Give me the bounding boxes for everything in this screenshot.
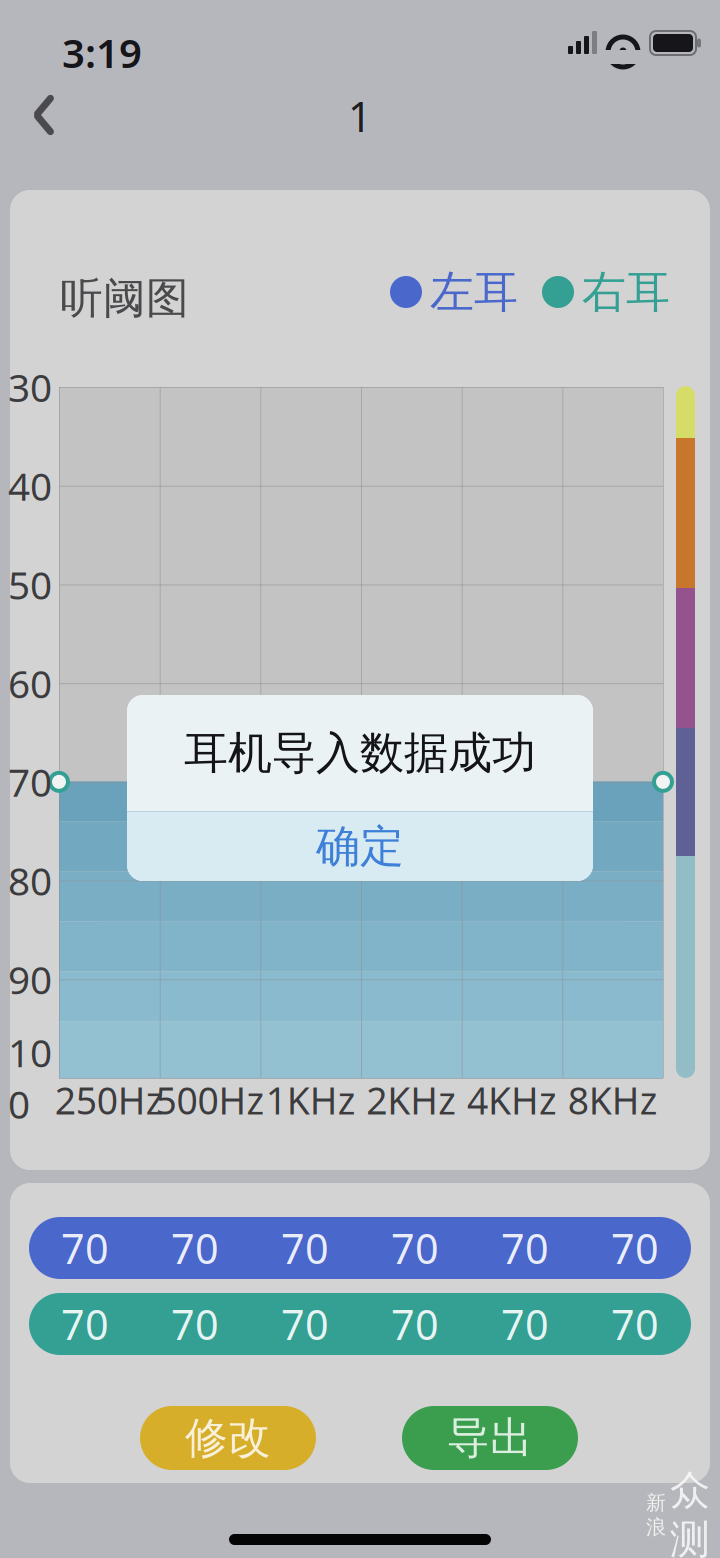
- staticText: 右耳: [582, 265, 670, 319]
- staticText: 30: [8, 361, 52, 413]
- staticText: 80: [8, 855, 52, 906]
- staticText: 耳机导入数据成功: [184, 726, 536, 780]
- staticText: 70: [171, 1297, 219, 1351]
- staticText: 新: [646, 1490, 666, 1515]
- staticText: 70: [391, 1221, 439, 1275]
- staticText: 250Hz: [55, 1075, 164, 1125]
- staticText: 60: [8, 657, 52, 709]
- staticText: 50: [8, 559, 52, 610]
- staticText: 500Hz: [155, 1075, 264, 1125]
- staticText: 导出: [447, 1412, 533, 1464]
- staticText: 4KHz: [467, 1075, 557, 1125]
- staticText: 3:19: [62, 26, 142, 79]
- button[interactable]: 修改: [140, 1406, 316, 1470]
- staticText: 修改: [185, 1412, 271, 1464]
- staticText: 1KHz: [266, 1075, 356, 1125]
- staticText: 90: [8, 954, 52, 1005]
- staticText: 70: [391, 1297, 439, 1351]
- staticText: 70: [8, 756, 52, 807]
- staticText: 100: [8, 1027, 52, 1129]
- staticText: 8KHz: [568, 1075, 658, 1125]
- staticText: 众测: [670, 1466, 710, 1558]
- staticText: 浪: [646, 1515, 666, 1540]
- button[interactable]: 导出: [402, 1406, 578, 1470]
- staticText: 2KHz: [366, 1075, 456, 1125]
- staticText: 70: [281, 1297, 329, 1351]
- button[interactable]: Back: [4, 76, 84, 154]
- staticText: 70: [281, 1221, 329, 1275]
- staticText: 70: [61, 1221, 109, 1275]
- button[interactable]: 70: [29, 1217, 691, 1279]
- staticText: 听阈图: [60, 272, 189, 324]
- button[interactable]: 70: [29, 1293, 691, 1355]
- staticText: 70: [501, 1221, 549, 1275]
- staticText: 左耳: [430, 265, 518, 319]
- staticText: 确定: [316, 819, 404, 873]
- staticText: 70: [501, 1297, 549, 1351]
- staticText: 70: [611, 1221, 659, 1275]
- staticText: 1: [348, 89, 372, 143]
- staticText: 70: [171, 1221, 219, 1275]
- staticText: 70: [61, 1297, 109, 1351]
- button[interactable]: 确定: [127, 812, 593, 881]
- staticText: 40: [8, 460, 52, 511]
- staticText: 70: [611, 1297, 659, 1351]
